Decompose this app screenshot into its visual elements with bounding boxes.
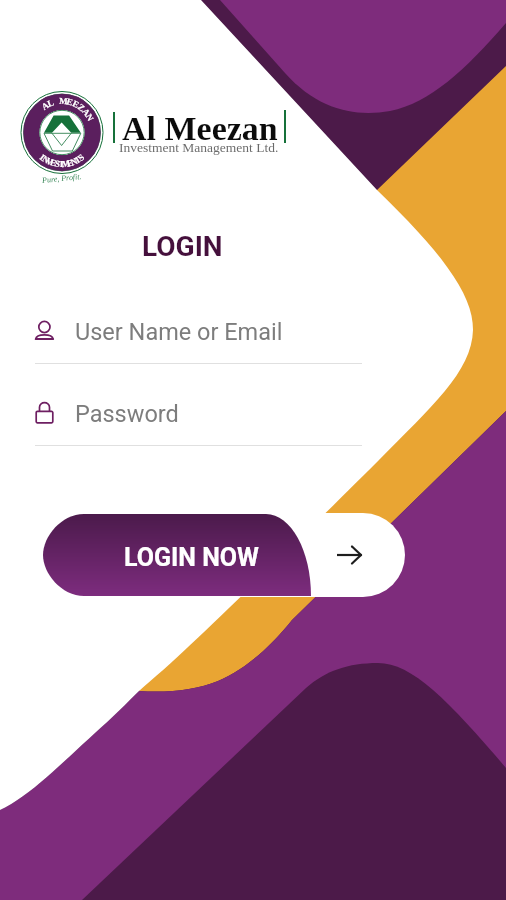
staticText: LOGIN NOW [124,543,259,572]
button[interactable]: Password [35,385,362,451]
staticText: User Name or Email [75,318,283,346]
staticText: LOGIN [142,230,223,263]
staticText: Password [75,400,179,428]
button[interactable]: User Name or Email [35,301,362,369]
button[interactable]: Proceed [43,513,405,597]
other: Proceed [337,545,362,565]
staticText: Investment Management Ltd. [119,140,279,155]
staticText: Al Meezan [122,110,278,148]
